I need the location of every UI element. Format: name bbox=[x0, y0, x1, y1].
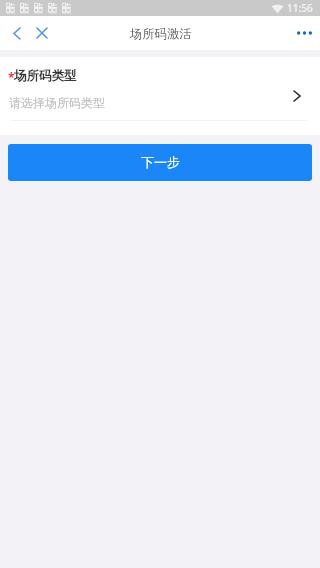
staticText: 场所码类型 bbox=[14, 68, 77, 84]
button[interactable]: 请选择场所码类型 bbox=[0, 90, 320, 120]
button[interactable]: More options bbox=[291, 16, 317, 50]
button[interactable]: Close bbox=[29, 16, 55, 50]
staticText: 场所码激活 bbox=[130, 26, 192, 41]
staticText: 请选择场所码类型 bbox=[9, 95, 105, 110]
staticText: * bbox=[8, 69, 15, 85]
staticText: 11:56 bbox=[287, 1, 313, 15]
button[interactable]: Back bbox=[4, 16, 29, 50]
button[interactable]: 下一步 bbox=[8, 144, 312, 181]
staticText: 下一步 bbox=[141, 154, 180, 170]
